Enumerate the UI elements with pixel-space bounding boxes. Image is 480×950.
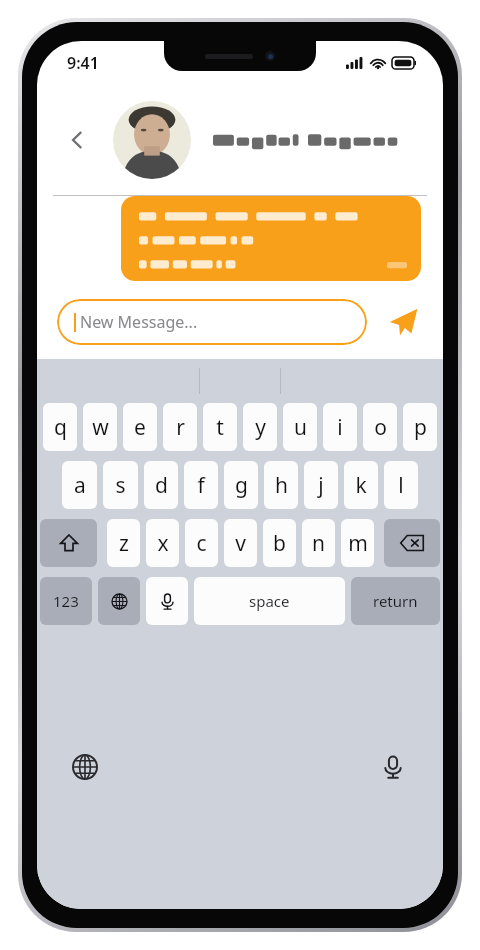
- button[interactable]: space: [194, 577, 345, 625]
- button[interactable]: i: [323, 403, 357, 451]
- button[interactable]: d: [144, 461, 178, 509]
- button[interactable]: return: [351, 577, 440, 625]
- staticText: x: [157, 529, 169, 558]
- button[interactable]: t: [203, 403, 237, 451]
- staticText: f: [197, 471, 205, 500]
- staticText: l: [398, 471, 404, 500]
- button[interactable]: w: [83, 403, 117, 451]
- staticText: h: [275, 471, 288, 500]
- button[interactable]: z: [107, 519, 140, 567]
- button[interactable]: n: [302, 519, 335, 567]
- button[interactable]: Dictate: [146, 577, 188, 625]
- staticText: o: [374, 413, 387, 442]
- button[interactable]: s: [103, 461, 138, 509]
- button[interactable]: [384, 519, 440, 567]
- button[interactable]: g: [224, 461, 258, 509]
- button[interactable]: e: [123, 403, 157, 451]
- button[interactable]: j: [304, 461, 338, 509]
- staticText: i: [337, 413, 343, 442]
- staticText: v: [235, 529, 246, 558]
- button[interactable]: p: [403, 403, 437, 451]
- button[interactable]: v: [224, 519, 257, 567]
- button[interactable]: r: [163, 403, 197, 451]
- staticText: s: [115, 471, 126, 500]
- button[interactable]: b: [263, 519, 296, 567]
- button[interactable]: New Message...: [57, 299, 367, 345]
- staticText: k: [355, 471, 367, 500]
- staticText: g: [235, 471, 248, 500]
- button[interactable]: a: [62, 461, 97, 509]
- button[interactable]: c: [185, 519, 218, 567]
- button[interactable]: y: [243, 403, 277, 451]
- staticText: e: [134, 413, 146, 442]
- staticText: return: [373, 591, 418, 611]
- button[interactable]: m: [341, 519, 374, 567]
- button[interactable]: 123: [40, 577, 92, 625]
- button[interactable]: Back: [55, 118, 99, 162]
- button[interactable]: Change keyboard: [98, 577, 140, 625]
- staticText: n: [312, 529, 325, 558]
- staticText: y: [255, 413, 266, 442]
- button[interactable]: x: [146, 519, 179, 567]
- button[interactable]: Dictate: [373, 747, 413, 787]
- staticText: 9:41: [67, 52, 99, 74]
- staticText: m: [348, 529, 368, 558]
- button[interactable]: h: [264, 461, 298, 509]
- staticText: t: [216, 413, 224, 442]
- staticText: u: [294, 413, 307, 442]
- staticText: r: [176, 413, 185, 442]
- button[interactable]: [40, 519, 97, 567]
- staticText: w: [92, 413, 109, 442]
- staticText: p: [414, 413, 427, 442]
- button[interactable]: l: [384, 461, 418, 509]
- staticText: b: [273, 529, 286, 558]
- staticText: 123: [53, 591, 79, 611]
- button[interactable]: Change keyboard: [65, 747, 105, 787]
- button[interactable]: f: [184, 461, 218, 509]
- staticText: q: [54, 413, 67, 442]
- staticText: d: [155, 471, 168, 500]
- button[interactable]: [121, 196, 421, 281]
- staticText: j: [318, 471, 324, 500]
- staticText: z: [119, 529, 129, 558]
- button[interactable]: k: [344, 461, 378, 509]
- staticText: space: [249, 591, 290, 611]
- staticText: New Message...: [80, 311, 198, 333]
- button[interactable]: u: [283, 403, 317, 451]
- button[interactable]: Send: [381, 300, 425, 344]
- staticText: a: [74, 471, 86, 500]
- button[interactable]: q: [43, 403, 77, 451]
- button[interactable]: o: [363, 403, 397, 451]
- staticText: c: [196, 529, 207, 558]
- button[interactable]: Profile photo: [113, 101, 191, 179]
